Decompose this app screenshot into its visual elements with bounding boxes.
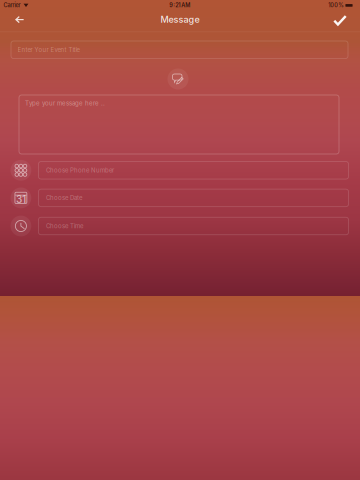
button[interactable]: Enter Your Event Title	[11, 41, 348, 58]
staticText: 100%	[328, 2, 344, 9]
button[interactable]: Choose Phone Number	[38, 162, 348, 179]
button[interactable]: Choose time	[9, 214, 33, 238]
button[interactable]: Done	[325, 7, 355, 33]
button[interactable]: Back	[5, 7, 35, 33]
staticText: 9:21 AM	[169, 2, 190, 9]
button[interactable]: Type your message here ..	[19, 95, 339, 154]
staticText: Enter Your Event Title	[17, 46, 79, 53]
button[interactable]: Compose message	[165, 66, 191, 92]
staticText: Message	[160, 14, 199, 25]
button[interactable]: Choose phone number	[9, 158, 33, 182]
staticText: Type your message here ..	[25, 100, 105, 107]
button[interactable]: Choose Time	[38, 217, 348, 235]
staticText: 31	[16, 193, 26, 205]
staticText: Choose Time	[46, 222, 83, 230]
button[interactable]: Choose Date	[38, 189, 348, 207]
staticText: Choose Date	[46, 194, 82, 202]
button[interactable]: Choose date	[9, 186, 33, 210]
staticText: Carrier	[3, 2, 20, 9]
staticText: Choose Phone Number	[46, 167, 114, 174]
